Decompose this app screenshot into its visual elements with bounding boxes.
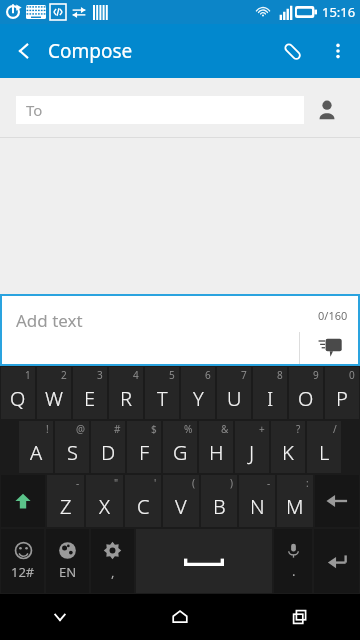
button[interactable]: Voice input [274, 529, 312, 593]
staticText: V [175, 493, 187, 520]
staticText: X [99, 493, 110, 520]
button[interactable]: Settings [91, 529, 134, 593]
button[interactable]: : [277, 475, 313, 527]
button[interactable]: @ [55, 421, 89, 473]
staticText: A [30, 439, 43, 466]
staticText: T [157, 385, 168, 412]
staticText: W [45, 385, 63, 412]
staticText: . [292, 562, 296, 580]
button[interactable]: 5 [145, 367, 179, 419]
button[interactable]: More options [316, 24, 360, 78]
button[interactable]: Send message [300, 324, 360, 366]
button[interactable]: ? [271, 421, 305, 473]
staticText: Add text [16, 309, 83, 332]
button[interactable]: Home [120, 594, 240, 640]
staticText: L [319, 439, 330, 466]
staticText: 8 [277, 368, 283, 382]
button[interactable]: Shift [1, 475, 45, 527]
staticText: C [137, 493, 150, 520]
button[interactable]: 3 [73, 367, 107, 419]
button[interactable]: 0 [325, 367, 359, 419]
staticText: Z [60, 493, 72, 520]
staticText: D [101, 439, 116, 466]
staticText: 1 [25, 368, 31, 382]
staticText: 12# [11, 563, 35, 581]
button[interactable]: % [163, 421, 197, 473]
button[interactable]: 9 [289, 367, 323, 419]
staticText: ! [46, 422, 49, 436]
staticText: % [184, 422, 193, 436]
staticText: H [209, 439, 224, 466]
button[interactable]: Backspace [315, 475, 359, 527]
staticText: ( [192, 476, 195, 490]
button[interactable]: & [199, 421, 233, 473]
staticText: - [76, 476, 80, 490]
staticText: N [250, 493, 265, 520]
staticText: EN [59, 563, 77, 581]
staticText: To [26, 100, 43, 120]
button[interactable]: 6 [181, 367, 215, 419]
staticText: @ [76, 422, 85, 436]
staticText: " [114, 476, 119, 490]
button[interactable]: Enter [314, 529, 359, 593]
button[interactable]: Pick contact [304, 96, 350, 124]
staticText: U [227, 385, 242, 412]
button[interactable]: 2 [37, 367, 71, 419]
button[interactable]: ) [201, 475, 237, 527]
button[interactable]: 7 [217, 367, 251, 419]
button[interactable]: " [86, 475, 123, 527]
staticText: 9 [313, 368, 319, 382]
staticText: , [111, 563, 115, 581]
staticText: / [333, 422, 337, 436]
staticText: ) [230, 476, 233, 490]
staticText: 6 [205, 368, 211, 382]
staticText: # [114, 422, 121, 436]
button[interactable]: - [47, 475, 84, 527]
staticText: S [67, 439, 78, 466]
staticText: 7 [241, 368, 247, 382]
staticText: : [306, 476, 309, 490]
staticText: E [84, 385, 96, 412]
button[interactable]: Change language [46, 529, 89, 593]
staticText: F [139, 439, 150, 466]
staticText: K [282, 439, 294, 466]
staticText: 0/160 [318, 308, 348, 323]
staticText: 15:16 [322, 3, 356, 21]
button[interactable]: + [235, 421, 269, 473]
button[interactable]: To [16, 96, 304, 124]
staticText: ' [154, 476, 157, 490]
button[interactable]: Hide keyboard [0, 594, 120, 640]
staticText: & [221, 422, 229, 436]
button[interactable]: ! [19, 421, 53, 473]
button[interactable]: ' [125, 475, 161, 527]
staticText: Q [10, 385, 26, 412]
button[interactable]: # [91, 421, 125, 473]
staticText: - [267, 476, 271, 490]
staticText: R [120, 385, 132, 412]
button[interactable]: Symbols [1, 529, 44, 593]
button[interactable]: - [239, 475, 275, 527]
staticText: 5 [169, 368, 175, 382]
staticText: $ [151, 422, 157, 436]
staticText: 4 [133, 368, 139, 382]
button[interactable]: Recent apps [240, 594, 360, 640]
staticText: + [259, 422, 265, 436]
button[interactable]: 1 [1, 367, 35, 419]
staticText: Compose [48, 38, 133, 64]
button[interactable]: ( [163, 475, 199, 527]
button[interactable]: / [307, 421, 341, 473]
staticText: G [173, 439, 188, 466]
button[interactable]: 8 [253, 367, 287, 419]
staticText: 0 [349, 368, 355, 382]
staticText: J [249, 439, 255, 466]
button[interactable]: Back [0, 24, 48, 78]
button[interactable]: 4 [109, 367, 143, 419]
button[interactable]: Space [136, 529, 272, 593]
staticText: ? [296, 422, 301, 436]
button[interactable]: Add text [0, 294, 360, 366]
button[interactable]: Attach [268, 24, 316, 78]
staticText: I [267, 385, 274, 412]
button[interactable]: $ [127, 421, 161, 473]
